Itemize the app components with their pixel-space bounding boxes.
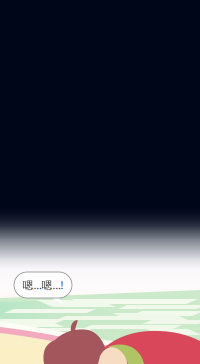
staticText: 嗯…嗯…! [22, 278, 63, 292]
